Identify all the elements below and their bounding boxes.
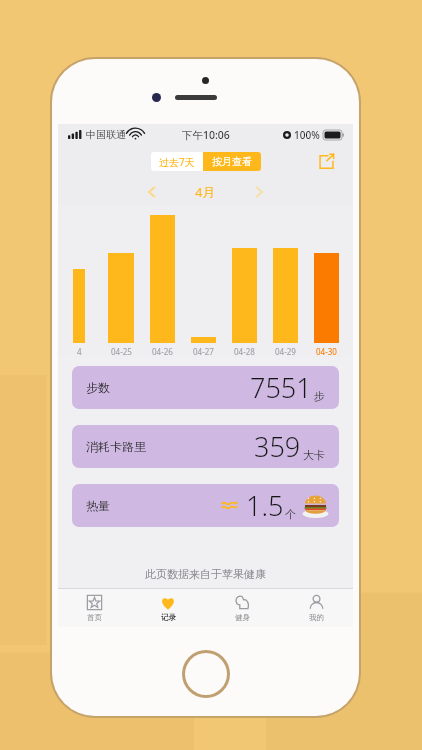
staticText: 04-26 [152,346,173,357]
staticText: 健身 [235,613,250,622]
staticText: 04-28 [234,346,255,357]
button[interactable]: 消耗卡路里 [72,425,339,468]
staticText: 下午10:06 [182,128,230,142]
staticText: 4月 [195,183,216,201]
button[interactable]: 首页 [58,589,131,627]
staticText: 步数 [86,380,110,395]
staticText: 4 [77,346,82,357]
staticText: 个 [285,507,296,521]
staticText: 大卡 [303,448,325,462]
staticText: 我的 [309,613,324,622]
staticText: 中国联通 [86,128,126,141]
button[interactable]: Home [182,650,230,698]
staticText: 04-30 [316,346,337,357]
staticText: 按月查看 [212,155,252,168]
staticText: 7551 [250,369,312,406]
button[interactable]: Share [318,153,335,170]
button[interactable]: Previous month [146,186,158,198]
staticText: 热量 [86,498,110,513]
button[interactable]: 按月查看 [203,152,261,171]
staticText: 此页数据来自于苹果健康 [58,567,353,581]
button[interactable]: Next month [253,186,265,198]
button[interactable]: 热量 [72,484,339,527]
staticText: 100% [294,128,320,142]
staticText: 359 [254,428,301,465]
button[interactable]: 过去7天 [151,152,203,171]
staticText: 1.5 [246,487,284,524]
button[interactable]: 记录 [131,589,205,627]
button[interactable]: 健身 [205,589,279,627]
staticText: 记录 [161,613,176,622]
staticText: 04-25 [111,346,132,357]
button[interactable]: 步数 [72,366,339,409]
button[interactable]: 我的 [279,589,353,627]
staticText: 过去7天 [159,155,195,169]
staticText: 消耗卡路里 [86,439,146,454]
staticText: 04-27 [193,346,214,357]
staticText: 步 [314,389,325,403]
staticText: 04-29 [275,346,296,357]
staticText: 首页 [87,613,102,622]
